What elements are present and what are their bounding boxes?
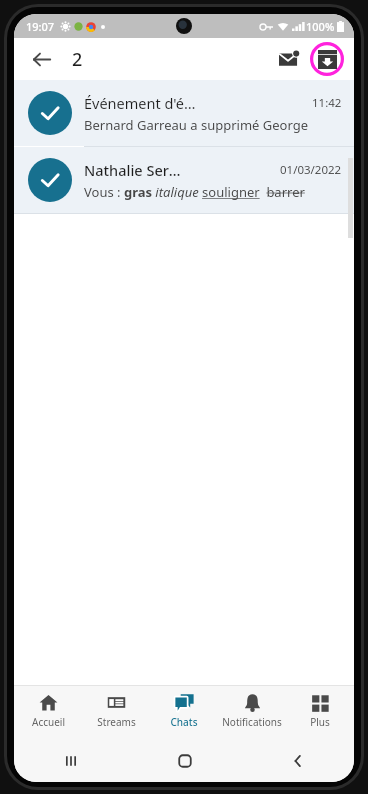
button[interactable]: Home	[128, 740, 241, 782]
staticText: 11:42	[312, 95, 342, 111]
staticText: 100%	[306, 19, 335, 34]
button[interactable]: Streams	[82, 686, 150, 740]
button[interactable]: Back	[22, 40, 60, 78]
staticText: Bernard Garreau a supprimé George Harr…	[84, 116, 342, 134]
staticText: Nathalie Serieys	[84, 160, 182, 180]
staticText: Événement d'équipe	[84, 93, 198, 113]
staticText: Streams	[97, 715, 136, 729]
staticText: 19:07	[26, 19, 55, 34]
button[interactable]: Événement d'équipe	[14, 80, 354, 146]
button[interactable]: Notifications	[218, 686, 286, 740]
button[interactable]: Archive	[308, 40, 346, 78]
staticText: Chats	[170, 715, 198, 729]
staticText: Vous : gras italique souligner barrer hy…	[84, 183, 342, 201]
button[interactable]: Back	[241, 740, 354, 782]
staticText: Accueil	[32, 715, 65, 729]
button[interactable]: Mark unread	[270, 40, 308, 78]
staticText: 01/03/2022	[280, 162, 342, 178]
staticText: Notifications	[222, 715, 282, 729]
button[interactable]: Chats	[150, 686, 218, 740]
button[interactable]: Plus	[286, 686, 354, 740]
button[interactable]: Recents	[14, 740, 128, 782]
staticText: Plus	[310, 715, 330, 729]
button[interactable]: Accueil	[14, 686, 82, 740]
staticText: 2	[72, 47, 83, 72]
button[interactable]: Nathalie Serieys	[14, 147, 354, 213]
